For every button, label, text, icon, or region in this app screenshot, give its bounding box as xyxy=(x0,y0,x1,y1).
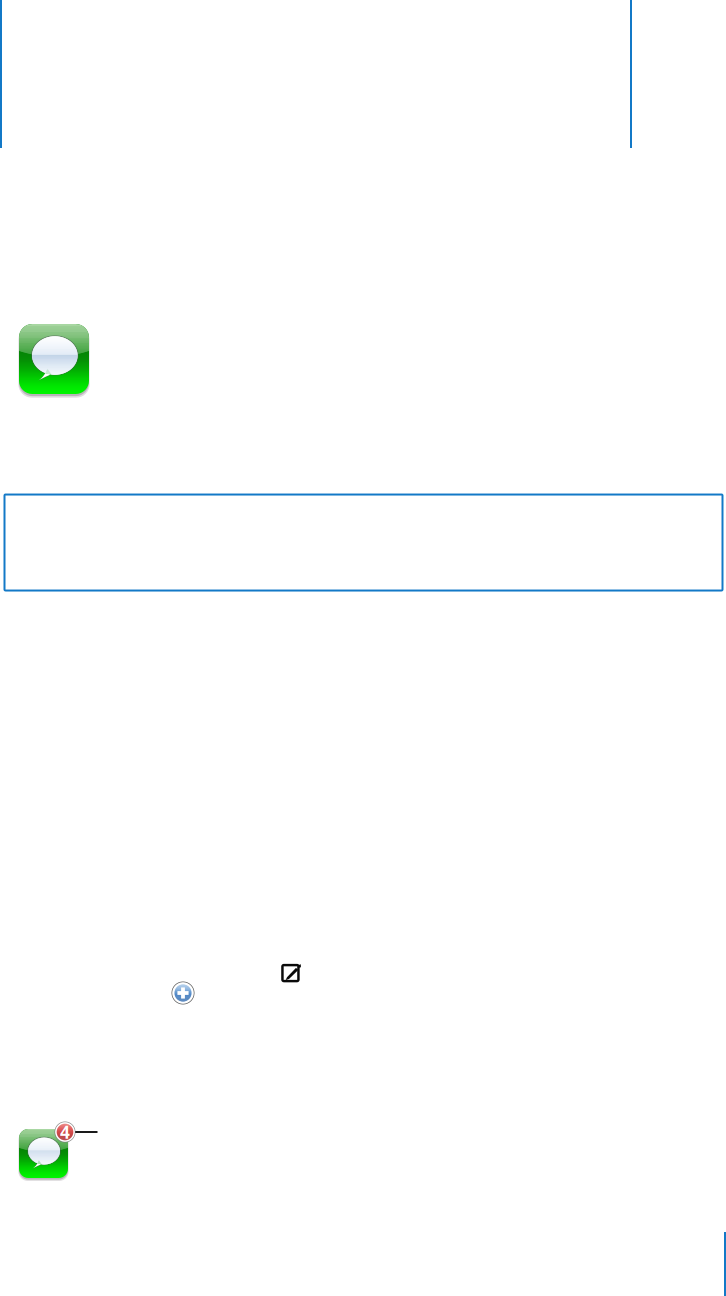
staticText: 4 xyxy=(60,1120,70,1143)
button[interactable]: Messages app icon xyxy=(19,324,89,398)
button[interactable]: Add xyxy=(171,981,194,1004)
button[interactable]: Messages app icon with badge xyxy=(19,1129,68,1181)
button[interactable]: Compose xyxy=(282,961,303,981)
